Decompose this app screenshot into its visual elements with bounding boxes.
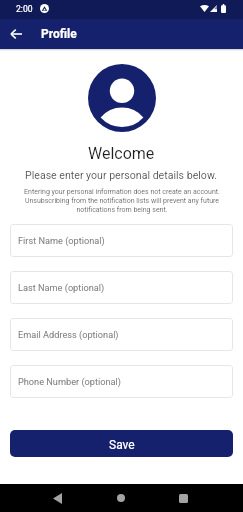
staticText: Save <box>109 438 135 452</box>
staticText: First Name (optional) <box>18 235 105 246</box>
staticText: Entering your personal information does … <box>22 188 222 214</box>
button[interactable]: Recent apps <box>169 484 197 512</box>
button[interactable]: Email Address (optional) <box>10 318 233 351</box>
staticText: Last Name (optional) <box>18 282 105 293</box>
staticText: 2:00 <box>16 4 33 14</box>
staticText: Phone Number (optional) <box>18 376 121 387</box>
button[interactable]: Home <box>107 484 135 512</box>
button[interactable]: Save <box>10 430 233 457</box>
button[interactable]: Phone Number (optional) <box>10 365 233 398</box>
button[interactable]: Last Name (optional) <box>10 271 233 304</box>
staticText: Email Address (optional) <box>18 329 119 340</box>
button[interactable]: Back <box>43 484 71 512</box>
staticText: Welcome <box>88 144 155 163</box>
staticText: Please enter your personal details below… <box>25 169 218 181</box>
button[interactable]: Back <box>2 20 30 48</box>
button[interactable]: First Name (optional) <box>10 224 233 257</box>
staticText: Profile <box>41 27 77 41</box>
